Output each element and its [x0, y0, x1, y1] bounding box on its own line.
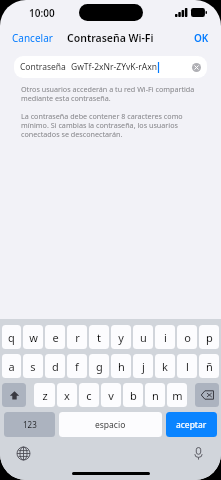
- button[interactable]: l: [177, 354, 197, 378]
- staticText: 123: [23, 419, 37, 430]
- staticText: c: [86, 388, 92, 403]
- staticText: q: [8, 330, 15, 345]
- button[interactable]: c: [79, 383, 99, 407]
- staticText: u: [140, 330, 147, 345]
- button[interactable]: e: [45, 325, 65, 349]
- button[interactable]: Retroceso: [195, 383, 219, 407]
- button[interactable]: Mayúsculas: [2, 383, 26, 407]
- staticText: p: [206, 330, 213, 345]
- staticText: Cancelar: [12, 31, 53, 45]
- staticText: 10:00: [29, 6, 55, 20]
- button[interactable]: k: [155, 354, 175, 378]
- staticText: j: [142, 359, 145, 374]
- button[interactable]: z: [34, 383, 55, 407]
- button[interactable]: b: [123, 383, 143, 407]
- button[interactable]: q: [2, 325, 21, 349]
- staticText: w: [29, 330, 38, 345]
- staticText: s: [30, 359, 36, 374]
- button[interactable]: d: [45, 354, 65, 378]
- staticText: o: [184, 330, 191, 345]
- staticText: Contraseña: [20, 61, 66, 73]
- staticText: ñ: [206, 359, 213, 374]
- button[interactable]: 123: [4, 412, 55, 437]
- staticText: i: [164, 330, 167, 345]
- staticText: Otros usuarios accederán a tu red Wi-Fi …: [21, 84, 200, 104]
- staticText: h: [118, 359, 125, 374]
- button[interactable]: a: [2, 354, 21, 378]
- button[interactable]: Dictado: [189, 444, 207, 462]
- button[interactable]: h: [111, 354, 131, 378]
- staticText: aceptar: [176, 419, 207, 431]
- button[interactable]: OK: [182, 27, 221, 49]
- staticText: y: [118, 330, 124, 345]
- button[interactable]: u: [133, 325, 153, 349]
- button[interactable]: g: [89, 354, 109, 378]
- button[interactable]: Cancelar: [0, 27, 65, 49]
- button[interactable]: w: [23, 325, 43, 349]
- button[interactable]: f: [67, 354, 87, 378]
- staticText: f: [75, 359, 79, 374]
- button[interactable]: ñ: [199, 354, 219, 378]
- button[interactable]: i: [155, 325, 175, 349]
- button[interactable]: aceptar: [166, 412, 217, 437]
- staticText: d: [52, 359, 59, 374]
- staticText: La contraseña debe contener 8 caracteres…: [21, 111, 200, 140]
- staticText: a: [8, 359, 15, 374]
- button[interactable]: r: [67, 325, 87, 349]
- staticText: t: [97, 330, 101, 345]
- button[interactable]: s: [23, 354, 43, 378]
- staticText: k: [162, 359, 168, 374]
- button[interactable]: t: [89, 325, 109, 349]
- staticText: Contraseña Wi-Fi: [67, 31, 154, 45]
- staticText: OK: [194, 31, 209, 45]
- button[interactable]: n: [145, 383, 165, 407]
- staticText: z: [42, 388, 48, 403]
- staticText: r: [75, 330, 80, 345]
- button[interactable]: o: [177, 325, 197, 349]
- button[interactable]: j: [133, 354, 153, 378]
- staticText: v: [108, 388, 114, 403]
- button[interactable]: m: [167, 383, 187, 407]
- staticText: n: [152, 388, 159, 403]
- button[interactable]: espacio: [59, 412, 162, 437]
- staticText: l: [186, 359, 189, 374]
- button[interactable]: y: [111, 325, 131, 349]
- button[interactable]: v: [101, 383, 121, 407]
- staticText: GwTf-2xNr-ZYvK-rAxn: [71, 61, 158, 73]
- staticText: e: [52, 330, 59, 345]
- staticText: b: [130, 388, 137, 403]
- staticText: m: [172, 388, 183, 403]
- button[interactable]: Cambiar teclado: [14, 444, 32, 462]
- button[interactable]: p: [199, 325, 219, 349]
- staticText: espacio: [95, 419, 126, 431]
- button[interactable]: x: [57, 383, 77, 407]
- button[interactable]: Contraseña: [14, 56, 207, 78]
- staticText: g: [96, 359, 103, 374]
- button[interactable]: Borrar texto: [189, 60, 203, 74]
- staticText: x: [64, 388, 70, 403]
